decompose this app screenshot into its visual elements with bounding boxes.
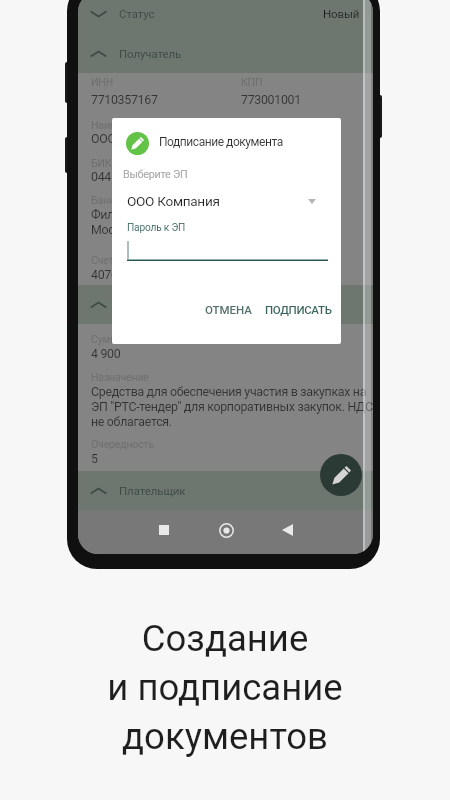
staticText: Филиал "Центральный" Банка Москва (91, 207, 258, 237)
staticText: Пароль к ЭП (127, 222, 186, 234)
staticText: 044525225 (91, 169, 151, 184)
staticText: Выберите ЭП (123, 168, 188, 181)
button[interactable]: Create document (320, 454, 362, 496)
button[interactable]: ПОДПИСАТЬ (257, 295, 340, 324)
staticText: Подписание документа (159, 135, 283, 149)
button[interactable]: Recents (154, 520, 174, 540)
staticText: ООО Компания (127, 193, 220, 209)
staticText: Наименование (91, 119, 164, 131)
button[interactable]: ООО Компания (112, 188, 341, 214)
staticText: ОТМЕНА (205, 303, 252, 316)
staticText: Назначение (91, 371, 149, 383)
staticText: Сумма (91, 333, 124, 345)
staticText: Статус (119, 7, 155, 20)
staticText: Очередность (91, 438, 154, 450)
staticText: ПОДПИСАТЬ (265, 303, 332, 316)
button[interactable]: Плательщик (78, 471, 373, 511)
button[interactable]: Home (216, 520, 236, 540)
staticText: Получатель (119, 47, 182, 60)
staticText: Счет (91, 254, 114, 266)
staticText: 5 (91, 451, 98, 466)
button[interactable]: Платеж (78, 285, 373, 324)
staticText: Банк (91, 194, 115, 206)
staticText: Плательщик (119, 484, 186, 497)
staticText: БИК (91, 157, 112, 169)
staticText: 40702810938000000000 (91, 267, 225, 282)
staticText: 7710357167 (91, 92, 158, 107)
staticText: 773001001 (241, 92, 301, 107)
staticText: Создание и подписание документов (0, 617, 450, 758)
button[interactable]: Статус (78, 0, 373, 34)
staticText: Новый (323, 7, 360, 20)
button[interactable]: ОТМЕНА (197, 295, 260, 324)
button[interactable]: Back (277, 520, 297, 540)
button[interactable]: Получатель (78, 34, 373, 73)
staticText: ИНН (91, 76, 114, 88)
staticText: ООО "Компания" (91, 131, 183, 146)
staticText: Средства для обеспечения участия в закуп… (91, 384, 373, 429)
staticText: 4 900 (91, 346, 121, 361)
staticText: КПП (241, 76, 263, 88)
